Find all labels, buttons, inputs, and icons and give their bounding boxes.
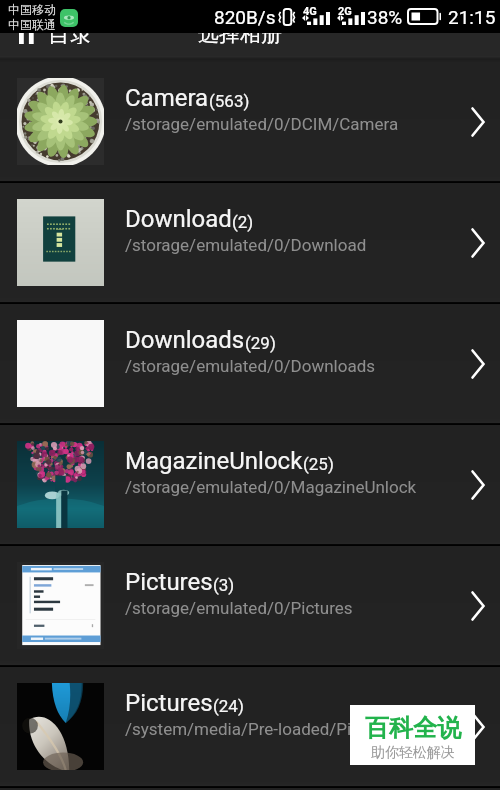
staticText: Pictures	[125, 689, 213, 717]
staticText: MagazineUnlock	[125, 447, 303, 475]
staticText: /storage/emulated/0/MagazineUnlock	[125, 477, 417, 497]
staticText: Pictures	[125, 568, 213, 596]
staticText: (29)	[245, 333, 276, 353]
other: Open folder	[456, 342, 500, 386]
other: Open folder	[456, 221, 500, 265]
staticText: 选择相册	[198, 21, 282, 44]
staticText: /storage/emulated/0/Pictures	[125, 598, 353, 618]
staticText: 21:15	[448, 6, 496, 28]
staticText: 38%	[367, 6, 403, 28]
staticText: /storage/emulated/0/Download	[125, 235, 367, 255]
other: Open folder	[456, 584, 500, 628]
button[interactable]: Pictures	[0, 546, 500, 665]
button[interactable]: Pictures	[0, 667, 500, 786]
staticText: Downloads	[125, 326, 245, 354]
button[interactable]: Download	[0, 183, 500, 302]
staticText: (3)	[213, 575, 235, 595]
staticText: Download	[125, 205, 232, 233]
staticText: (25)	[303, 454, 334, 474]
button[interactable]: MagazineUnlock	[0, 425, 500, 544]
staticText: /system/media/Pre-loaded/Pictures	[125, 719, 399, 739]
other: Open folder	[456, 463, 500, 507]
staticText: (563)	[209, 91, 250, 111]
button[interactable]: Downloads	[0, 304, 500, 423]
staticText: 2G	[338, 5, 352, 18]
staticText: (24)	[213, 696, 244, 716]
staticText: 助你轻松解决	[371, 744, 455, 762]
staticText: 4G	[303, 5, 317, 18]
button[interactable]: 选择相册	[198, 21, 282, 44]
staticText: /storage/emulated/0/DCIM/Camera	[125, 114, 399, 134]
button[interactable]: 目录	[19, 21, 92, 44]
button[interactable]: Camera	[0, 62, 500, 181]
staticText: 中国移动	[8, 2, 56, 17]
staticText: (2)	[232, 212, 254, 232]
staticText: 百科全说	[365, 713, 461, 743]
staticText: 中国联通	[8, 17, 56, 32]
staticText: 目录	[48, 21, 92, 44]
staticText: 820B/s	[214, 6, 276, 28]
other: Open folder	[456, 705, 500, 749]
staticText: Camera	[125, 84, 209, 112]
other: Open folder	[456, 100, 500, 144]
staticText: /storage/emulated/0/Downloads	[125, 356, 376, 376]
